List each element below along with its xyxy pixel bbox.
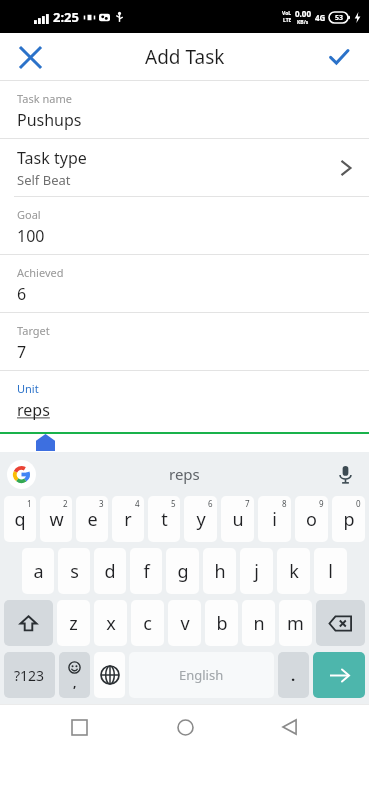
staticText: k xyxy=(289,559,299,584)
staticText: w xyxy=(49,507,64,532)
staticText: Unit xyxy=(17,381,39,396)
staticText: 8 xyxy=(282,498,287,509)
button[interactable]: c xyxy=(131,600,164,646)
button[interactable]: h xyxy=(203,548,236,594)
button[interactable]: Google xyxy=(7,460,36,489)
button[interactable]: e xyxy=(76,496,108,542)
button[interactable]: Goal xyxy=(0,197,369,254)
staticText: Pushups xyxy=(17,109,82,131)
button[interactable]: g xyxy=(166,548,199,594)
button[interactable]: Task name xyxy=(0,81,369,138)
button[interactable]: a xyxy=(22,548,54,594)
button[interactable]: Save task xyxy=(317,35,361,79)
staticText: 2 xyxy=(63,498,68,509)
button[interactable]: English xyxy=(129,652,274,698)
button[interactable]: w xyxy=(40,496,72,542)
staticText: ?123 xyxy=(14,666,45,685)
staticText: Self Beat xyxy=(17,171,71,189)
staticText: 1 xyxy=(27,498,32,509)
staticText: m xyxy=(287,611,304,636)
button[interactable]: . xyxy=(278,652,309,698)
button[interactable]: l xyxy=(314,548,347,594)
button[interactable]: Close xyxy=(8,35,52,79)
button[interactable]: Change language xyxy=(94,652,125,698)
staticText: Add Task xyxy=(145,44,225,70)
staticText: reps xyxy=(169,464,200,484)
button[interactable]: x xyxy=(94,600,127,646)
staticText: n xyxy=(253,611,265,636)
staticText: KB/s xyxy=(297,19,309,26)
staticText: 6 xyxy=(208,498,213,509)
button[interactable]: p xyxy=(332,496,365,542)
staticText: reps xyxy=(17,399,50,421)
staticText: Task name xyxy=(17,91,72,106)
staticText: r xyxy=(124,507,132,532)
staticText: LTE xyxy=(283,17,292,24)
staticText: e xyxy=(87,507,98,532)
button[interactable]: r xyxy=(112,496,144,542)
button[interactable]: d xyxy=(94,548,126,594)
button[interactable]: Task type xyxy=(0,139,369,196)
staticText: b xyxy=(216,611,228,636)
staticText: Achieved xyxy=(17,265,64,280)
staticText: 100 xyxy=(17,225,45,247)
button[interactable]: z xyxy=(57,600,90,646)
button[interactable]: q xyxy=(4,496,36,542)
button[interactable]: Voice input xyxy=(330,459,360,489)
staticText: 4 xyxy=(135,498,140,509)
staticText: 7 xyxy=(17,341,27,363)
button[interactable]: ?123 xyxy=(4,652,55,698)
button[interactable]: i xyxy=(258,496,291,542)
staticText: f xyxy=(143,559,150,584)
button[interactable]: Recent apps xyxy=(53,705,105,749)
staticText: a xyxy=(33,559,44,584)
button[interactable]: Back xyxy=(264,705,316,749)
staticText: 2:25 xyxy=(53,8,79,26)
button[interactable]: o xyxy=(295,496,328,542)
staticText: English xyxy=(179,666,224,684)
button[interactable]: y xyxy=(184,496,217,542)
staticText: 3 xyxy=(99,498,104,509)
button[interactable]: Unit xyxy=(0,371,369,451)
button[interactable]: k xyxy=(277,548,310,594)
button[interactable]: Target xyxy=(0,313,369,370)
button[interactable]: Achieved xyxy=(0,255,369,312)
staticText: u xyxy=(232,507,244,532)
staticText: 7 xyxy=(245,498,250,509)
staticText: o xyxy=(306,507,317,532)
staticText: h xyxy=(214,559,226,584)
staticText: y xyxy=(196,507,206,532)
staticText: z xyxy=(69,611,78,636)
button[interactable]: n xyxy=(242,600,275,646)
staticText: , xyxy=(73,674,77,690)
button[interactable]: f xyxy=(130,548,162,594)
staticText: q xyxy=(14,507,26,532)
staticText: 5 xyxy=(171,498,176,509)
button[interactable]: Home xyxy=(159,705,211,749)
button[interactable]: Emoji and comma xyxy=(59,652,90,698)
staticText: Task type xyxy=(17,147,87,169)
button[interactable]: s xyxy=(58,548,90,594)
button[interactable]: b xyxy=(205,600,238,646)
button[interactable]: t xyxy=(148,496,180,542)
button[interactable]: reps xyxy=(149,458,220,490)
button[interactable]: Backspace xyxy=(316,600,365,646)
staticText: VoL xyxy=(282,10,292,17)
staticText: t xyxy=(161,507,168,532)
staticText: s xyxy=(70,559,79,584)
staticText: g xyxy=(177,559,189,584)
button[interactable]: m xyxy=(279,600,312,646)
staticText: . xyxy=(291,665,296,685)
button[interactable]: j xyxy=(240,548,273,594)
button[interactable]: Shift xyxy=(4,600,53,646)
staticText: 0 xyxy=(356,498,361,509)
staticText: i xyxy=(272,507,277,532)
button[interactable]: Enter xyxy=(313,652,365,698)
button[interactable]: u xyxy=(221,496,254,542)
button[interactable]: v xyxy=(168,600,201,646)
staticText: x xyxy=(106,611,116,636)
staticText: 6 xyxy=(17,283,27,305)
staticText: Goal xyxy=(17,207,41,222)
staticText: 0.00 xyxy=(295,8,311,19)
staticText: d xyxy=(104,559,116,584)
